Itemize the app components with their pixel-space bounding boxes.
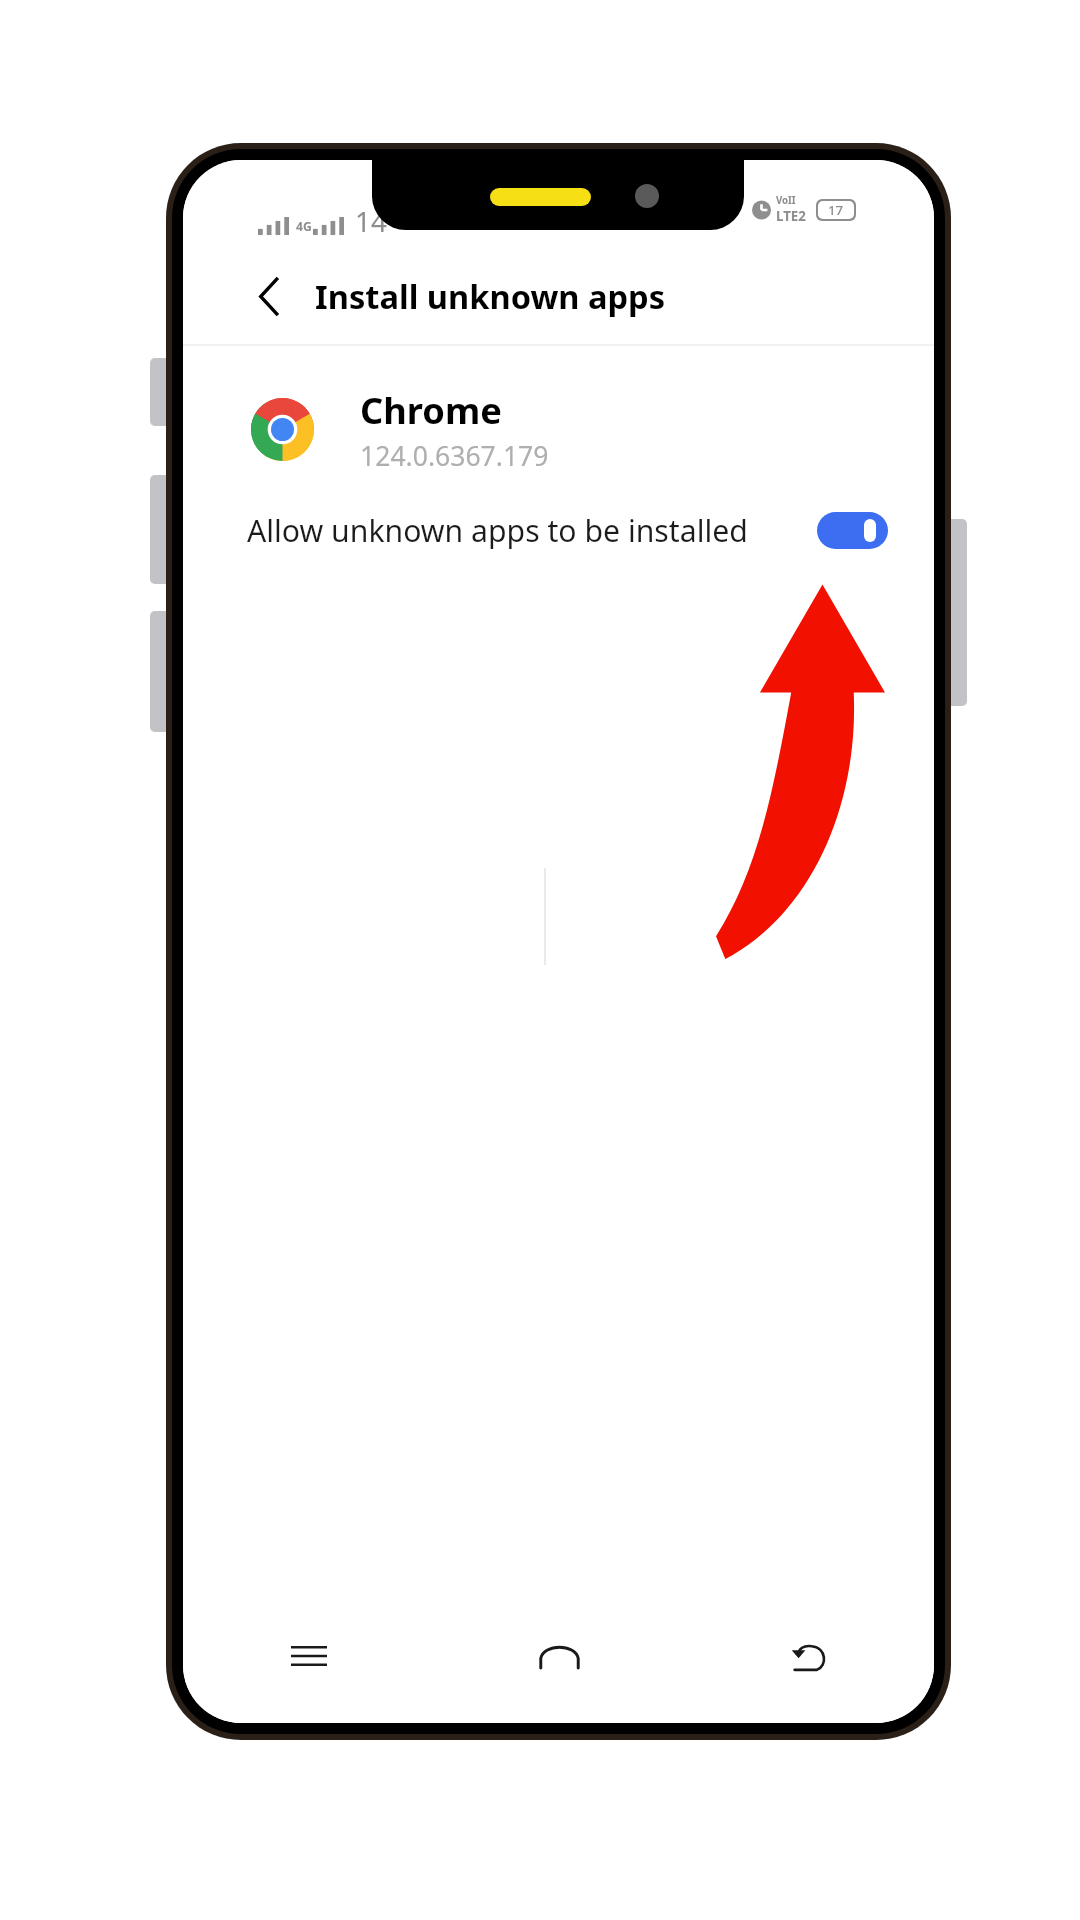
staticText: Chrome (360, 385, 502, 434)
staticText: 124.0.6367.179 (360, 438, 549, 474)
staticText: VoII (776, 194, 796, 207)
button[interactable]: Back (241, 268, 297, 324)
button[interactable]: Home (434, 1620, 684, 1692)
button[interactable]: Back (684, 1620, 934, 1692)
button[interactable]: Allow unknown apps to be installed (183, 498, 934, 563)
staticText: LTE2 (776, 207, 806, 225)
staticText: Allow unknown apps to be installed (247, 510, 748, 551)
staticText: 17 (828, 201, 844, 219)
staticText: Install unknown apps (315, 274, 666, 318)
staticText: 14 (355, 202, 387, 240)
staticText: 4G (296, 218, 312, 234)
button[interactable]: Chrome (183, 377, 934, 481)
button[interactable]: Recent apps (183, 1620, 434, 1692)
